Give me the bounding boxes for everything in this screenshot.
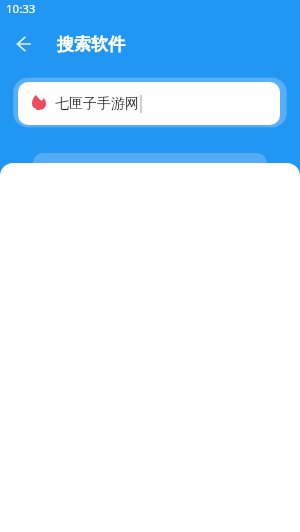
staticText: 搜索软件	[57, 34, 125, 55]
button[interactable]: Back	[2, 22, 46, 66]
staticText: 七匣子手游网	[55, 95, 139, 113]
staticText: 10:33	[6, 1, 36, 17]
button[interactable]: 七匣子手游网	[18, 82, 280, 125]
